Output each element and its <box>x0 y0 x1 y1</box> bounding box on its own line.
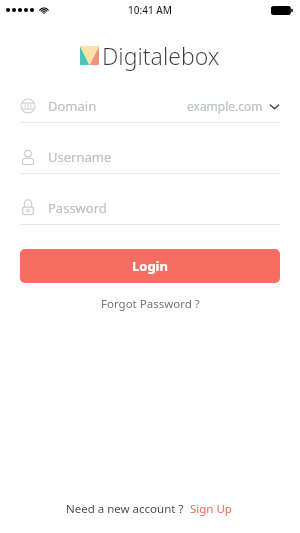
staticText: Sign Up <box>190 501 232 517</box>
staticText: example.com <box>187 98 263 114</box>
button[interactable]: Forgot Password ? <box>91 293 210 315</box>
button[interactable]: Password <box>20 199 280 225</box>
staticText: Password <box>48 199 107 217</box>
button[interactable]: Sign Up <box>188 499 234 519</box>
staticText: Domain <box>48 97 97 115</box>
staticText: Login <box>132 257 168 275</box>
button[interactable]: Domain <box>20 97 280 123</box>
other: Choose domain <box>269 101 280 112</box>
staticText: 10:41 AM <box>128 3 172 17</box>
staticText: Forgot Password ? <box>101 296 200 312</box>
staticText: Username <box>48 148 112 166</box>
staticText: Need a new account ? <box>66 501 184 517</box>
staticText: Digitalebox <box>102 40 220 71</box>
button[interactable]: Username <box>20 148 280 174</box>
button[interactable]: Login <box>20 249 280 283</box>
